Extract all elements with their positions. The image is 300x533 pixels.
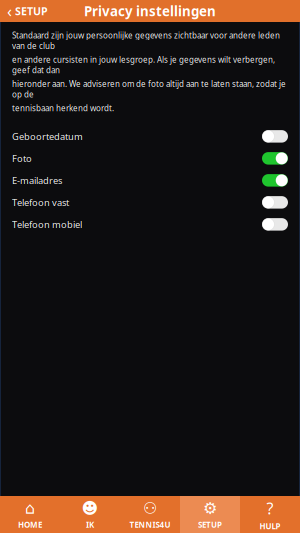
staticText: Privacy instellingen (84, 2, 216, 20)
button[interactable]: Geboortedatum (1, 125, 299, 147)
button[interactable]: ? (240, 496, 300, 533)
button[interactable]: Telefoon mobiel (1, 213, 299, 235)
button[interactable]: ☻ (60, 496, 120, 533)
button[interactable]: Back to Setup (0, 0, 55, 22)
staticText: ☻ (81, 499, 98, 517)
staticText: SETUP (198, 519, 222, 530)
staticText: Geboortedatum (12, 130, 83, 143)
staticText: Telefoon vast (12, 196, 69, 209)
staticText: ⌂ (25, 499, 35, 517)
staticText: E-mailadres (12, 174, 62, 187)
staticText: ⚇ (143, 499, 157, 517)
staticText: IK (86, 519, 94, 530)
staticText: HULP (259, 521, 280, 531)
button[interactable]: E-mailadres (1, 169, 299, 191)
staticText: Foto (12, 152, 32, 165)
staticText: tennisbaan herkend wordt. (12, 103, 114, 113)
staticText: ‹ (7, 0, 12, 22)
staticText: en andere cursisten in jouw lesgroep. Al… (12, 54, 275, 75)
staticText: TENNIS4U (129, 519, 170, 530)
button[interactable]: ⚇ (120, 496, 180, 533)
button[interactable]: Foto (1, 147, 299, 169)
staticText: SETUP (15, 4, 48, 18)
staticText: Telefoon mobiel (12, 218, 82, 231)
button[interactable]: ⌂ (0, 496, 60, 533)
staticText: ⚙ (203, 499, 217, 517)
staticText: Standaard zijn jouw persoonlijke gegeven… (12, 30, 280, 51)
staticText: hieronder aan. We adviseren om de foto a… (12, 78, 286, 100)
button[interactable]: ⚙ (180, 496, 240, 533)
staticText: HOME (18, 519, 42, 530)
staticText: ? (266, 498, 273, 519)
button[interactable]: Telefoon vast (1, 191, 299, 213)
